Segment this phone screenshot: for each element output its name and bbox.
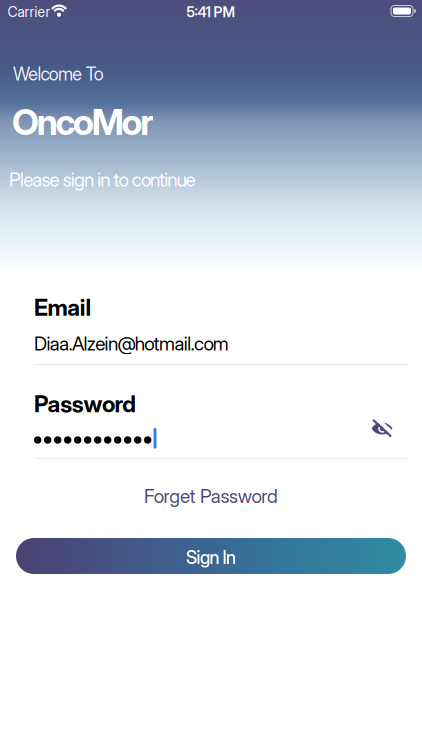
button[interactable] xyxy=(365,411,399,445)
staticText: Password xyxy=(34,390,136,418)
staticText: Welcome To xyxy=(13,63,104,85)
staticText: Carrier xyxy=(7,3,50,20)
button[interactable]: Forget Password xyxy=(0,484,422,508)
staticText: Forget Password xyxy=(144,484,278,507)
staticText: Sign In xyxy=(186,547,236,568)
staticText: Email xyxy=(34,293,91,321)
staticText: OncoMor xyxy=(12,100,153,144)
staticText: 5:41 PM xyxy=(186,3,235,21)
button[interactable]: Sign In xyxy=(16,538,406,574)
staticText: Please sign in to continue xyxy=(9,168,195,191)
staticText: Diaa.Alzein@hotmail.com xyxy=(34,332,229,355)
